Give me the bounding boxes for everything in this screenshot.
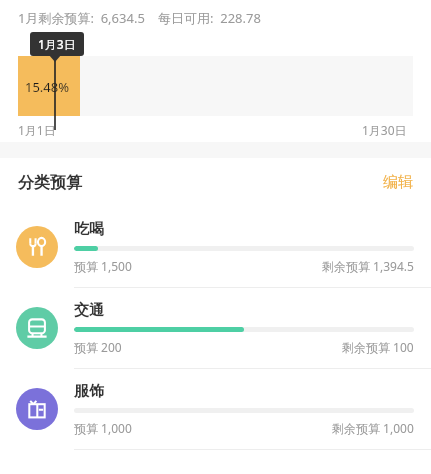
staticText: 预算 200 xyxy=(74,339,122,355)
staticText: 编辑 xyxy=(383,173,413,192)
staticText: 1月30日 xyxy=(362,122,407,138)
staticText: 15.48% xyxy=(25,78,70,96)
staticText: 1月1日 xyxy=(18,122,56,138)
button[interactable]: 吃喝 xyxy=(0,207,431,288)
staticText: 分类预算 xyxy=(18,173,82,193)
button[interactable]: 编辑 xyxy=(371,167,413,198)
staticText: 吃喝 xyxy=(74,220,104,239)
staticText: 服饰 xyxy=(74,382,104,401)
button[interactable]: 服饰 xyxy=(0,369,431,450)
staticText: 剩余预算 1,000 xyxy=(332,420,414,436)
button[interactable]: 交通 xyxy=(0,288,431,369)
staticText: 剩余预算 1,394.5 xyxy=(322,258,414,274)
staticText: 预算 1,500 xyxy=(74,258,132,274)
staticText: 每日可用: 228.78 xyxy=(158,9,261,27)
staticText: 1月3日 xyxy=(38,36,76,52)
staticText: 预算 1,000 xyxy=(74,420,132,436)
staticText: 剩余预算 100 xyxy=(342,339,414,355)
staticText: 1月剩余预算: 6,634.5 xyxy=(18,9,145,27)
staticText: 交通 xyxy=(74,301,104,320)
